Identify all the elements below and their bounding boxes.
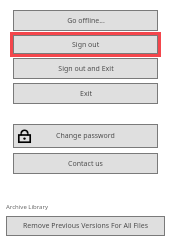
button[interactable]: Go offline... bbox=[13, 10, 158, 31]
staticText: Exit bbox=[80, 89, 92, 99]
button[interactable]: Remove Previous Versions For All Files bbox=[6, 216, 165, 236]
staticText: Remove Previous Versions For All Files bbox=[23, 221, 148, 231]
staticText: Contact us bbox=[68, 159, 103, 169]
button[interactable]: Sign out and Exit bbox=[13, 58, 158, 79]
button[interactable]: Sign out bbox=[13, 35, 158, 54]
button[interactable]: Change password bbox=[13, 124, 158, 148]
button[interactable]: Exit bbox=[13, 83, 158, 104]
other: Lock bbox=[17, 129, 32, 144]
staticText: Change password bbox=[56, 131, 115, 141]
staticText: Archive Library bbox=[6, 203, 48, 211]
button[interactable]: Contact us bbox=[13, 153, 158, 174]
staticText: Go offline... bbox=[67, 16, 105, 26]
staticText: Sign out bbox=[72, 40, 100, 50]
staticText: Sign out and Exit bbox=[58, 64, 114, 74]
